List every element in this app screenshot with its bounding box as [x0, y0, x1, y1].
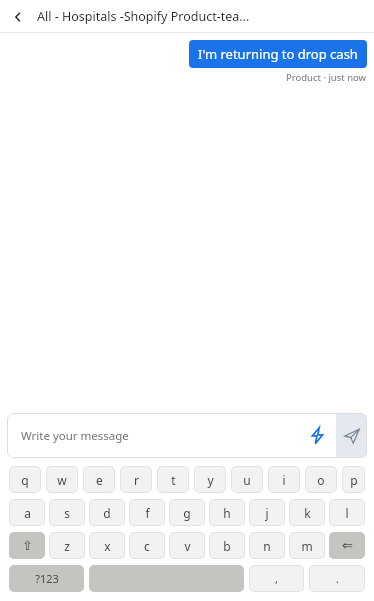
staticText: c	[144, 538, 150, 554]
button[interactable]: r	[120, 466, 152, 493]
staticText: z	[64, 538, 70, 554]
button[interactable]: Space	[89, 565, 244, 592]
button[interactable]: Backspace	[329, 532, 365, 559]
button[interactable]: z	[49, 532, 85, 559]
staticText: Product · just now	[286, 71, 367, 84]
staticText: s	[64, 505, 70, 521]
button[interactable]: d	[89, 499, 125, 526]
button[interactable]: b	[209, 532, 245, 559]
staticText: g	[183, 505, 191, 521]
button[interactable]: e	[83, 466, 115, 493]
button[interactable]: Send	[336, 413, 367, 458]
staticText: ⇐	[342, 538, 353, 553]
staticText: ?123	[35, 571, 59, 586]
staticText: w	[57, 472, 67, 488]
staticText: v	[184, 538, 191, 554]
button[interactable]: o	[305, 466, 337, 493]
button[interactable]: a	[9, 499, 45, 526]
staticText: Write your message	[21, 428, 129, 444]
staticText: I'm returning to drop cash	[198, 45, 358, 63]
button[interactable]: g	[169, 499, 205, 526]
button[interactable]: f	[129, 499, 165, 526]
button[interactable]: I'm returning to drop cash	[189, 40, 367, 68]
staticText: ⇧	[22, 538, 33, 553]
button[interactable]: k	[289, 499, 325, 526]
button[interactable]: u	[231, 466, 263, 493]
staticText: All - Hospitals -Shopify Product-tea...	[37, 8, 250, 25]
staticText: i	[282, 472, 286, 488]
staticText: e	[96, 472, 103, 488]
staticText: t	[171, 472, 176, 488]
staticText: n	[263, 538, 271, 554]
button[interactable]: ?123	[9, 565, 84, 592]
button[interactable]: h	[209, 499, 245, 526]
button[interactable]: w	[46, 466, 78, 493]
button[interactable]: l	[329, 499, 365, 526]
button[interactable]: y	[194, 466, 226, 493]
staticText: .	[336, 571, 339, 586]
button[interactable]: p	[342, 466, 365, 493]
button[interactable]: Write your message	[7, 413, 298, 458]
button[interactable]: i	[268, 466, 300, 493]
staticText: m	[301, 538, 313, 554]
staticText: o	[317, 472, 325, 488]
staticText: k	[304, 505, 311, 521]
button[interactable]: Quick replies	[298, 413, 336, 458]
button[interactable]: Shift	[9, 532, 45, 559]
staticText: f	[145, 505, 150, 521]
staticText: x	[104, 538, 111, 554]
staticText: u	[243, 472, 251, 488]
staticText: r	[134, 472, 139, 488]
staticText: h	[223, 505, 231, 521]
staticText: j	[265, 505, 269, 521]
button[interactable]: Back	[8, 7, 28, 27]
staticText: a	[24, 505, 31, 521]
button[interactable]: q	[9, 466, 41, 493]
staticText: ,	[275, 571, 278, 586]
staticText: p	[350, 472, 358, 488]
button[interactable]: .	[309, 565, 365, 592]
staticText: q	[21, 472, 29, 488]
button[interactable]: t	[157, 466, 189, 493]
button[interactable]: v	[169, 532, 205, 559]
button[interactable]: n	[249, 532, 285, 559]
staticText: y	[207, 472, 214, 488]
button[interactable]: ,	[249, 565, 304, 592]
staticText: d	[103, 505, 111, 521]
button[interactable]: m	[289, 532, 325, 559]
button[interactable]: c	[129, 532, 165, 559]
button[interactable]: x	[89, 532, 125, 559]
button[interactable]: s	[49, 499, 85, 526]
staticText: l	[345, 505, 349, 521]
button[interactable]: j	[249, 499, 285, 526]
staticText: b	[223, 538, 231, 554]
